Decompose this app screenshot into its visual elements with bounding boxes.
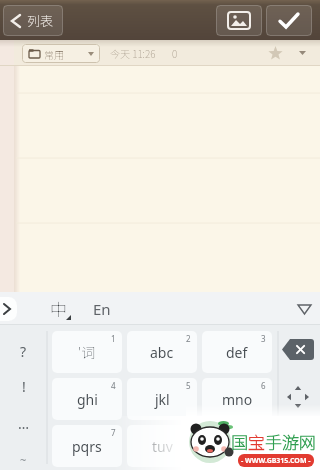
staticText: pqrs [72,437,102,456]
staticText: 8 [186,427,191,438]
button[interactable] [0,66,320,292]
staticText: … [18,414,30,433]
button[interactable]: jkl [127,378,197,420]
staticText: 0 [172,46,178,60]
staticText: ~ [20,452,27,467]
staticText: - WWW.GB315.COM - [241,456,311,466]
staticText: 7 [111,427,116,438]
staticText: 常用 [44,47,64,61]
staticText: '词 [78,342,96,362]
button[interactable]: 常用 [22,44,100,63]
staticText: ghi [77,390,98,409]
staticText: 中 [50,296,67,321]
button[interactable] [283,385,313,409]
button[interactable]: 中 [48,296,69,321]
staticText: 6 [261,380,266,391]
staticText: 列表 [27,11,54,30]
button[interactable]: ? [0,335,47,367]
button[interactable]: pqrs [52,425,122,467]
staticText: 2 [186,333,191,344]
staticText: 1 [111,333,116,344]
button[interactable]: 列表 [3,5,63,36]
button[interactable]: ~ [0,449,47,470]
button[interactable] [280,338,316,360]
button[interactable] [266,5,312,36]
button[interactable]: '词 [52,331,122,373]
button[interactable]: ghi [52,378,122,420]
staticText: tuv [152,437,173,456]
staticText: ! [22,377,26,396]
button[interactable]: En [91,299,113,319]
button[interactable] [262,40,288,66]
staticText: 国宝手游网 [231,429,316,454]
staticText: mno [222,390,253,409]
staticText: 9 [261,427,266,438]
button[interactable]: … [0,407,47,439]
staticText: ? [20,342,27,361]
staticText: En [93,299,111,319]
staticText: 5 [186,380,191,391]
button[interactable]: def [202,331,272,373]
staticText: jkl [155,390,170,409]
button[interactable] [216,5,262,36]
button[interactable]: mno [202,378,272,420]
button[interactable] [0,297,17,321]
staticText: 4 [111,380,116,391]
staticText: 今天 11:26 [110,46,156,60]
button[interactable]: tuv [127,425,197,467]
button[interactable]: ! [0,370,47,402]
staticText: 3 [261,333,266,344]
button[interactable] [292,297,316,321]
staticText: abc [150,343,174,362]
staticText: def [226,343,248,362]
button[interactable]: wxyz [202,425,272,467]
button[interactable] [288,40,316,66]
staticText: wxyz [221,437,254,456]
button[interactable]: abc [127,331,197,373]
